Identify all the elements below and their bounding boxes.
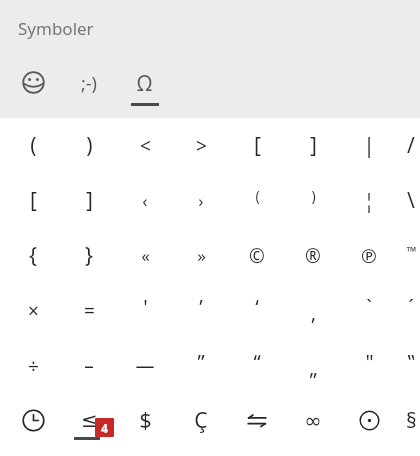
staticText: ™ — [406, 242, 417, 260]
button[interactable]: left brace — [5, 228, 61, 283]
staticText: ‹ — [142, 189, 148, 212]
button[interactable]: em dash — [117, 338, 173, 393]
button[interactable]: slash — [397, 118, 420, 173]
staticText: ÷ — [28, 353, 39, 379]
staticText: } — [85, 241, 93, 270]
staticText: ( — [30, 131, 37, 160]
button[interactable]: en dash — [61, 338, 117, 393]
button[interactable]: right single quote — [173, 283, 229, 338]
button[interactable]: low double quote — [285, 338, 341, 393]
staticText: ‚ — [311, 299, 316, 326]
button[interactable]: right bracket — [285, 118, 341, 173]
staticText: Ω — [137, 69, 153, 98]
button[interactable]: left single quote — [229, 283, 285, 338]
staticText: ;-) — [81, 71, 98, 96]
staticText: [ — [30, 186, 37, 215]
staticText: ℗ — [361, 243, 377, 269]
staticText: ( — [255, 186, 260, 205]
button[interactable]: Swap — [229, 393, 285, 448]
staticText: 4 — [101, 420, 108, 436]
staticText: – — [84, 353, 94, 379]
button[interactable]: Emoji — [5, 58, 61, 108]
button[interactable]: registered — [285, 228, 341, 283]
staticText: " — [365, 348, 374, 375]
button[interactable]: superscript right parenthesis — [285, 173, 341, 228]
button[interactable]: copyright — [229, 228, 285, 283]
button[interactable]: dollar — [117, 393, 173, 448]
staticText: „ — [309, 354, 318, 381]
staticText: > — [196, 133, 207, 159]
button[interactable]: trademark — [397, 228, 420, 283]
staticText: ` — [366, 293, 372, 320]
button[interactable]: circled dot — [341, 393, 397, 448]
staticText: ) — [86, 131, 93, 160]
button[interactable]: backslash — [397, 173, 420, 228]
button[interactable]: superscript left parenthesis — [229, 173, 285, 228]
staticText: × — [28, 298, 39, 324]
staticText: ] — [310, 131, 317, 160]
staticText: \ — [407, 186, 415, 215]
button[interactable]: left bracket — [229, 118, 285, 173]
staticText: { — [29, 241, 37, 270]
button[interactable]: less than or equal, 4 items — [61, 393, 117, 448]
button[interactable]: Ω — [117, 58, 173, 108]
staticText: ¦ — [363, 187, 375, 214]
staticText: © — [249, 243, 265, 269]
staticText: ’ — [199, 293, 203, 320]
button[interactable]: single left angle quote — [117, 173, 173, 228]
staticText: ≤ — [81, 408, 98, 431]
button[interactable]: Recent symbols — [5, 393, 61, 448]
button[interactable]: acute accent — [397, 283, 420, 338]
staticText: ® — [305, 243, 321, 269]
button[interactable]: vertical bar — [341, 118, 397, 173]
button[interactable]: double right angle quote — [173, 228, 229, 283]
button[interactable]: low single quote — [285, 283, 341, 338]
button[interactable]: section — [397, 393, 420, 448]
staticText: Symboler — [18, 17, 94, 40]
button[interactable]: right brace — [61, 228, 117, 283]
button[interactable]: division — [5, 338, 61, 393]
button[interactable]: multiplication — [5, 283, 61, 338]
staticText: ” — [197, 348, 205, 375]
staticText: $ — [139, 406, 152, 435]
staticText: § — [406, 406, 417, 435]
button[interactable]: right parenthesis — [61, 118, 117, 173]
staticText: | — [363, 131, 375, 160]
staticText: “ — [253, 348, 261, 375]
staticText: / — [407, 131, 415, 160]
staticText: ] — [86, 186, 93, 215]
staticText: — — [135, 353, 155, 379]
button[interactable]: double low quote — [397, 338, 420, 393]
button[interactable]: equals — [61, 283, 117, 338]
staticText: ´ — [408, 293, 414, 320]
button[interactable]: greater than — [173, 118, 229, 173]
staticText: ‘ — [255, 293, 259, 320]
staticText: ' — [143, 293, 148, 320]
button[interactable]: double left angle quote — [117, 228, 173, 283]
staticText: › — [198, 189, 204, 212]
button[interactable]: left square bracket — [5, 173, 61, 228]
button[interactable]: double prime — [341, 338, 397, 393]
button[interactable]: sound recording copyright — [341, 228, 397, 283]
button[interactable]: infinity — [285, 393, 341, 448]
button[interactable]: less than — [117, 118, 173, 173]
staticText: = — [84, 298, 95, 324]
button[interactable]: c cedilla — [173, 393, 229, 448]
button[interactable]: grave accent — [341, 283, 397, 338]
button[interactable]: apostrophe — [117, 283, 173, 338]
button[interactable]: single right angle quote — [173, 173, 229, 228]
button[interactable]: broken bar — [341, 173, 397, 228]
button[interactable]: right square bracket — [61, 173, 117, 228]
staticText: ∞ — [304, 409, 322, 433]
button[interactable]: ;-) — [61, 58, 117, 108]
staticText: ) — [311, 186, 316, 205]
staticText: « — [141, 244, 150, 267]
staticText: ‟ — [407, 348, 415, 375]
staticText: » — [197, 244, 206, 267]
staticText: [ — [254, 131, 261, 160]
button[interactable]: double quote — [173, 338, 229, 393]
staticText: < — [140, 133, 151, 159]
button[interactable]: left parenthesis — [5, 118, 61, 173]
staticText: Ç — [194, 406, 208, 435]
button[interactable]: left double quote — [229, 338, 285, 393]
